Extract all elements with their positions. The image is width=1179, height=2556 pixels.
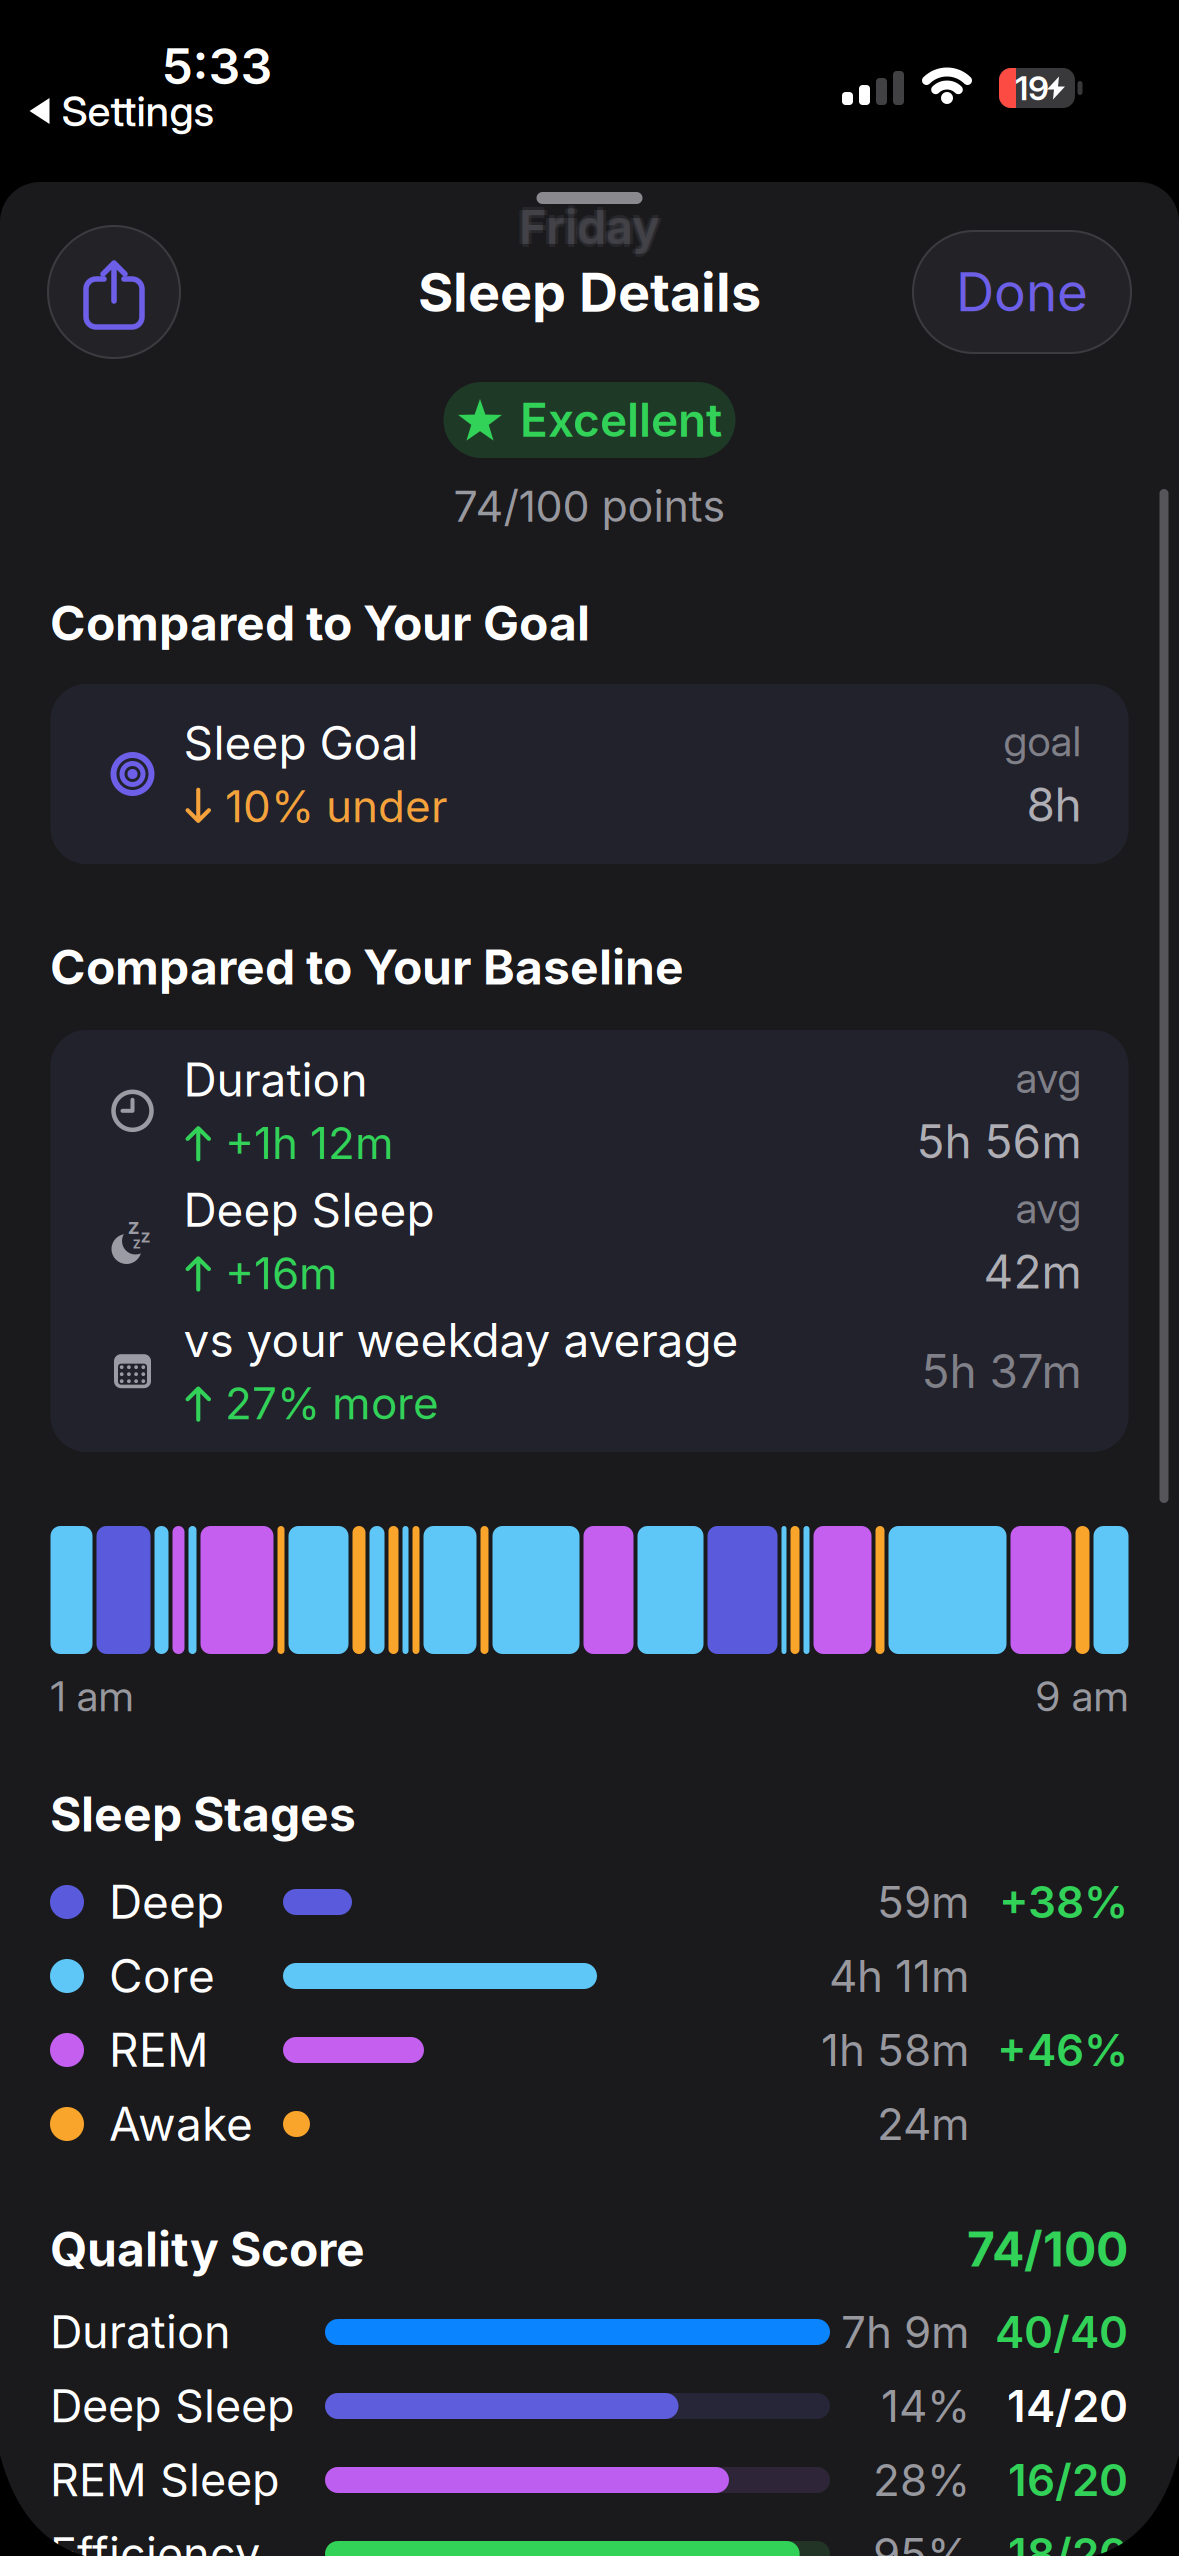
staticText: 16/20 xyxy=(1008,2454,1128,2506)
staticText: 18/20 xyxy=(1008,2528,1128,2556)
staticText: goal xyxy=(1003,716,1081,766)
staticText: z xyxy=(132,1234,140,1252)
staticText: 8h xyxy=(1026,778,1081,832)
staticText: z xyxy=(140,1225,150,1247)
staticText: 74/100 xyxy=(967,2221,1128,2277)
staticText: 14% xyxy=(881,2380,970,2432)
staticText: Duration xyxy=(50,2305,231,2359)
staticText: 5h 37m xyxy=(921,1344,1081,1398)
staticText: z xyxy=(127,1213,139,1239)
staticText: Sleep Goal xyxy=(183,716,418,770)
staticText: 5:33 xyxy=(161,36,272,95)
staticText: REM Sleep xyxy=(50,2453,280,2507)
staticText: 10% under xyxy=(225,780,448,832)
staticText: +46% xyxy=(997,2024,1128,2076)
staticText: 7h 9m xyxy=(841,2306,970,2358)
staticText: 1 am xyxy=(50,1671,133,1721)
staticText: 59m xyxy=(877,1876,970,1928)
staticText: Friday xyxy=(516,199,657,255)
staticText: Core xyxy=(109,1949,215,2003)
staticText: Friday xyxy=(519,202,660,258)
staticText: 14/20 xyxy=(1007,2380,1128,2432)
staticText: avg xyxy=(1015,1053,1081,1102)
staticText: 19 xyxy=(1015,68,1049,108)
button[interactable]: Back to Settings xyxy=(29,86,214,136)
staticText: 24m xyxy=(877,2098,970,2150)
staticText: vs your weekday average xyxy=(183,1313,738,1367)
staticText: Deep Sleep xyxy=(50,2379,295,2433)
staticText: +38% xyxy=(999,1876,1128,1928)
button[interactable]: Done xyxy=(913,231,1131,353)
staticText: +16m xyxy=(225,1247,338,1299)
staticText: 4h 11m xyxy=(829,1950,970,2002)
staticText: Compared to Your Baseline xyxy=(50,939,684,995)
staticText: Friday xyxy=(522,199,663,255)
staticText: Settings xyxy=(61,86,214,136)
staticText: Friday xyxy=(519,199,660,255)
staticText: REM xyxy=(109,2023,209,2077)
button[interactable]: Share xyxy=(48,226,180,358)
staticText: 1h 58m xyxy=(821,2024,970,2076)
staticText: Sleep Details xyxy=(418,260,761,324)
staticText: Done xyxy=(956,261,1088,323)
staticText: Deep xyxy=(109,1875,224,1929)
staticText: 74/100 points xyxy=(453,481,725,531)
staticText: 5h 56m xyxy=(916,1114,1081,1169)
staticText: Efficiency xyxy=(50,2527,260,2556)
staticText: 27% more xyxy=(225,1377,439,1429)
staticText: 9 am xyxy=(1035,1671,1128,1721)
staticText: Duration xyxy=(183,1053,367,1107)
staticText: 40/40 xyxy=(995,2306,1128,2358)
staticText: Sleep Stages xyxy=(50,1786,356,1842)
staticText: Awake xyxy=(109,2097,253,2151)
staticText: Friday xyxy=(519,196,660,252)
staticText: 95% xyxy=(873,2528,970,2556)
staticText: Compared to Your Goal xyxy=(50,595,590,651)
staticText: +1h 12m xyxy=(225,1117,394,1169)
staticText: 42m xyxy=(983,1245,1081,1299)
staticText: Quality Score xyxy=(50,2221,365,2277)
staticText: Excellent xyxy=(520,393,722,447)
staticText: 28% xyxy=(873,2454,970,2506)
staticText: Deep Sleep xyxy=(183,1183,434,1237)
staticText: avg xyxy=(1015,1183,1081,1233)
